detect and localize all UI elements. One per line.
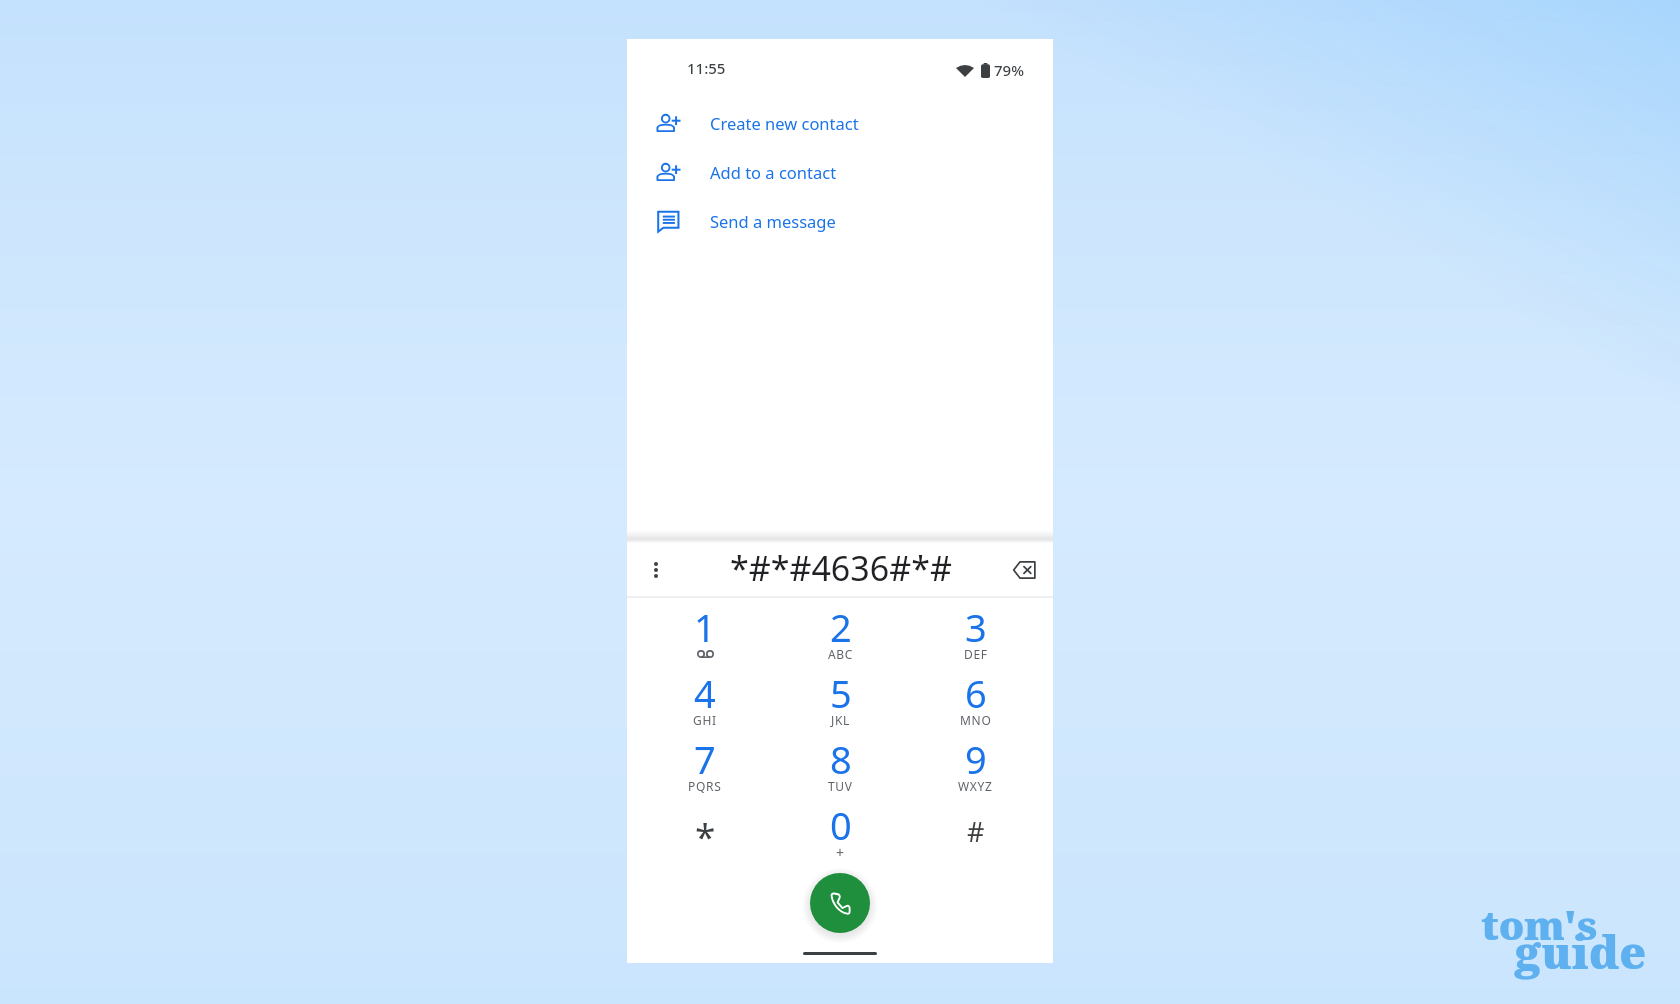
staticText: guide <box>1515 921 1647 982</box>
button[interactable]: 2 <box>773 598 908 664</box>
button[interactable]: More options <box>638 552 674 588</box>
staticText: + <box>836 843 845 862</box>
button[interactable]: Call <box>810 873 870 933</box>
staticText: 11:55 <box>687 58 726 78</box>
button[interactable]: Add to a contact <box>627 147 1053 196</box>
staticText: 0 <box>830 799 852 851</box>
staticText: 4 <box>694 667 716 719</box>
button[interactable]: 1 <box>637 598 773 664</box>
staticText: * <box>695 810 716 860</box>
button[interactable]: Backspace <box>1005 551 1043 589</box>
staticText: 3 <box>965 601 987 653</box>
button[interactable]: 9 <box>908 730 1043 796</box>
button[interactable]: 7 <box>637 730 773 796</box>
button[interactable]: # <box>908 796 1043 862</box>
staticText: 7 <box>694 733 716 785</box>
staticText: 8 <box>830 733 852 785</box>
staticText: ABC <box>828 646 854 662</box>
button[interactable]: 3 <box>908 598 1043 664</box>
staticText: PQRS <box>688 778 722 794</box>
staticText: *#*#4636#*# <box>730 545 952 591</box>
staticText: Create new contact <box>710 112 859 134</box>
staticText: MNO <box>960 712 992 728</box>
button[interactable]: 8 <box>773 730 908 796</box>
staticText: WXYZ <box>958 778 993 794</box>
staticText: TUV <box>828 778 853 794</box>
staticText: Send a message <box>710 210 836 232</box>
staticText: 6 <box>965 667 987 719</box>
staticText: tom's <box>1481 897 1598 951</box>
staticText: 9 <box>965 733 987 785</box>
button[interactable]: 6 <box>908 664 1043 730</box>
staticText: Add to a contact <box>710 161 837 183</box>
button[interactable]: 5 <box>773 664 908 730</box>
staticText: JKL <box>831 712 851 728</box>
button[interactable]: * <box>637 796 773 862</box>
staticText: GHI <box>693 712 717 728</box>
staticText: DEF <box>964 646 988 662</box>
button[interactable]: Send a message <box>627 196 1053 245</box>
button[interactable]: Create new contact <box>627 98 1053 147</box>
staticText: 79% <box>994 60 1024 80</box>
button[interactable]: 4 <box>637 664 773 730</box>
staticText: 5 <box>830 667 852 719</box>
staticText: # <box>967 813 985 850</box>
staticText: 2 <box>830 601 852 653</box>
button[interactable]: 0 <box>773 796 908 862</box>
staticText: 1 <box>694 601 716 653</box>
